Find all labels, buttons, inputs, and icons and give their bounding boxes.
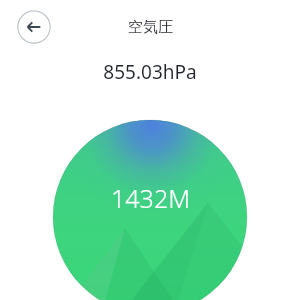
staticText: 855.03hPa: [103, 59, 197, 85]
button[interactable]: Back: [17, 10, 51, 44]
staticText: 空気圧: [128, 18, 173, 37]
staticText: 1432M: [111, 181, 190, 213]
